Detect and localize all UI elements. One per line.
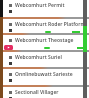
staticText: Sectionall Villager [15,89,59,96]
button[interactable]: Webcomhurt Permit [0,0,89,19]
staticText: Webcomhurt Suriel [15,54,62,61]
button[interactable]: Webcomhurt Theostage [0,35,89,52]
button[interactable]: Webcomhurt Suriel [0,52,89,70]
button[interactable]: Onnlinebuwatt Sarieste [0,69,89,87]
button[interactable]: Webcomhurt Roder Platform [0,19,89,36]
staticText: Webcomhurt Permit [15,2,65,9]
button[interactable]: Sectionall Villager [0,87,89,98]
staticText: Webcomhurt Theostage [15,37,74,44]
staticText: Webcomhurt Roder Platform [15,21,86,28]
staticText: Onnlinebuwatt Sarieste [15,71,73,78]
other: Play video [4,45,13,50]
